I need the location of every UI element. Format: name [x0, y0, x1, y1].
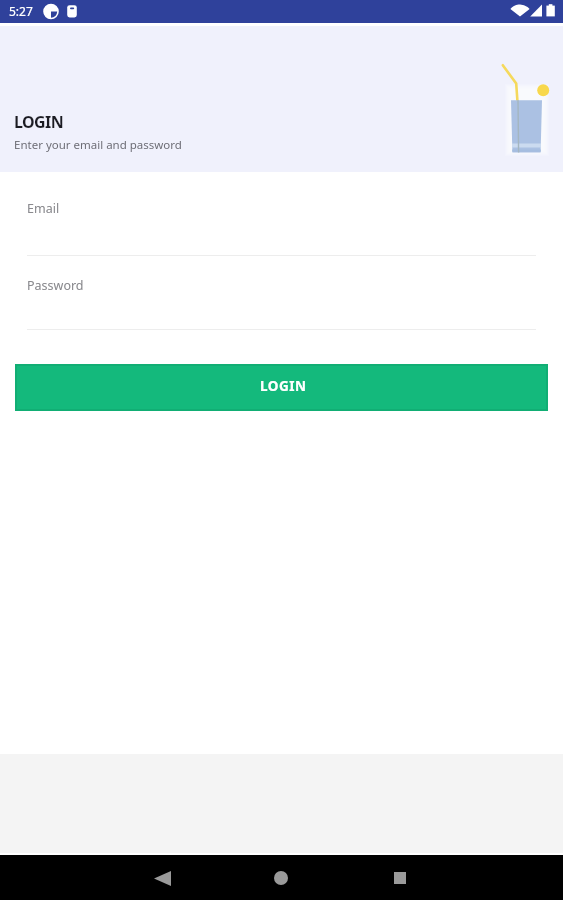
staticText: Enter your email and password [14, 137, 182, 153]
staticText: Password [27, 277, 84, 294]
button[interactable]: Recent apps [378, 856, 422, 900]
staticText: Email [27, 200, 60, 217]
staticText: LOGIN [260, 377, 307, 395]
button[interactable]: LOGIN [15, 364, 548, 411]
button[interactable]: Password [27, 277, 536, 329]
button[interactable]: Home [259, 856, 303, 900]
button[interactable]: Back [140, 856, 184, 900]
button[interactable]: Email [27, 200, 536, 255]
staticText: LOGIN [14, 111, 64, 133]
staticText: 5:27 [9, 3, 33, 19]
